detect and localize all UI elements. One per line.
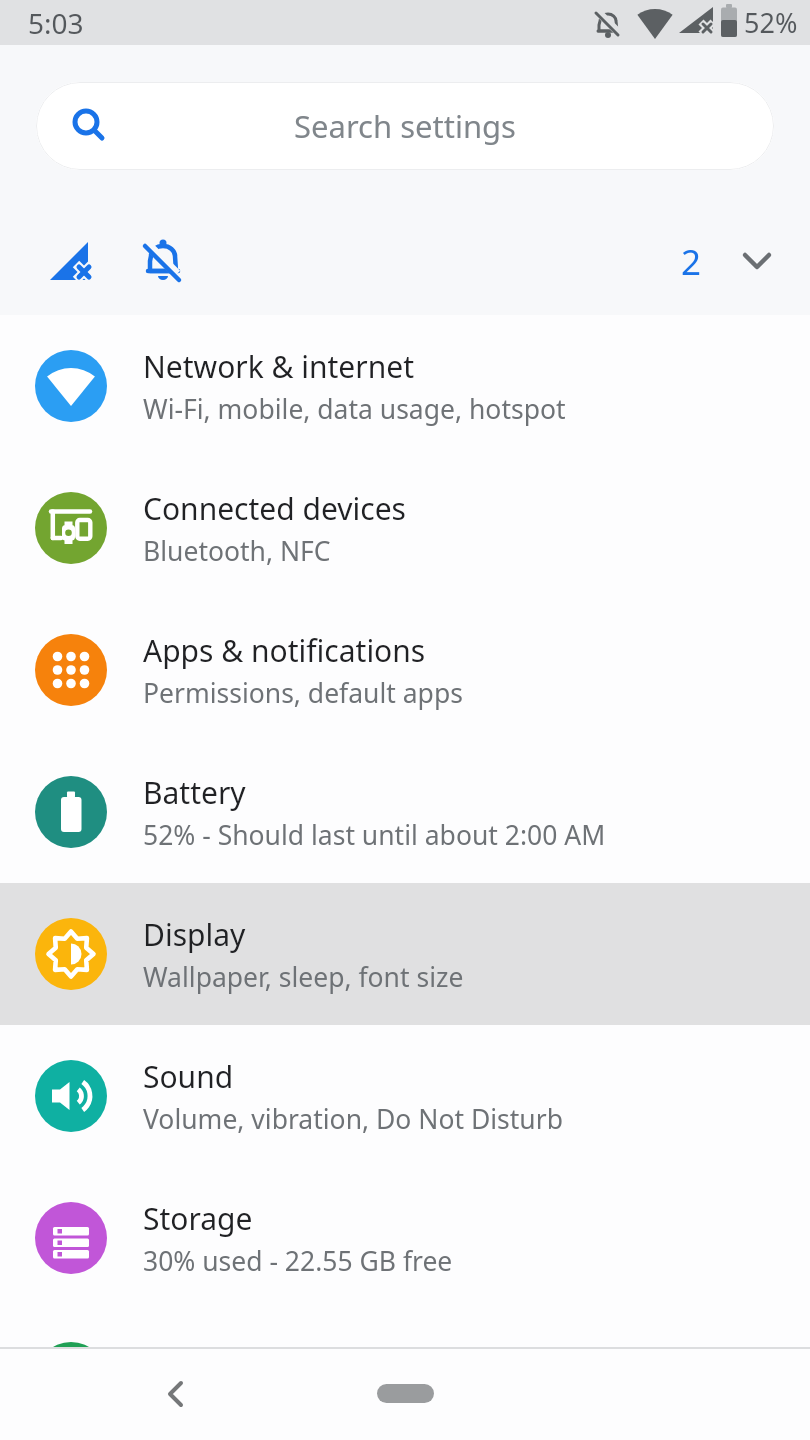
staticText: Bluetooth, NFC (143, 533, 331, 569)
button[interactable]: Battery (0, 741, 810, 883)
staticText: 5:03 (28, 4, 84, 42)
staticText: Network & internet (143, 346, 414, 387)
staticText: 52% - Should last until about 2:00 AM (143, 817, 606, 853)
button[interactable]: 2 (48, 208, 770, 315)
staticText: Battery (143, 772, 246, 813)
staticText: Permissions, default apps (143, 675, 463, 711)
button[interactable]: Display (0, 883, 810, 1025)
staticText: 52% (744, 4, 798, 41)
button[interactable] (377, 1384, 434, 1403)
staticText: Wallpaper, sleep, font size (143, 959, 464, 995)
button[interactable] (152, 1370, 200, 1418)
staticText: Storage (143, 1198, 253, 1239)
button[interactable]: Storage (0, 1167, 810, 1309)
button[interactable]: Connected devices (0, 457, 810, 599)
button[interactable]: Apps & notifications (0, 599, 810, 741)
staticText: 30% used - 22.55 GB free (143, 1243, 453, 1279)
button[interactable]: Search settings (36, 82, 774, 170)
button[interactable]: Network & internet (0, 315, 810, 457)
staticText: Display (143, 914, 246, 955)
staticText: Apps & notifications (143, 630, 426, 671)
staticText: Volume, vibration, Do Not Disturb (143, 1101, 563, 1137)
button[interactable]: Sound (0, 1025, 810, 1167)
staticText: Connected devices (143, 488, 406, 529)
staticText: Sound (143, 1056, 234, 1097)
staticText: Search settings (294, 105, 516, 147)
staticText: Wi-Fi, mobile, data usage, hotspot (143, 391, 566, 427)
staticText: 2 (681, 238, 702, 286)
